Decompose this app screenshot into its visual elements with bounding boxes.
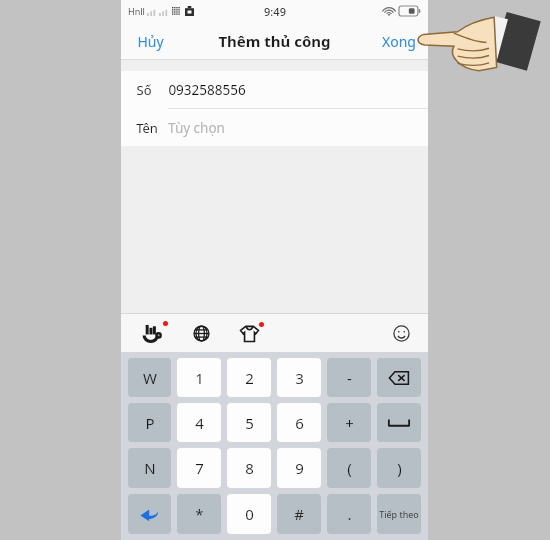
staticText: 3 <box>295 368 304 388</box>
button[interactable]: 8 <box>227 448 271 488</box>
staticText: 0 <box>245 504 254 524</box>
button[interactable]: Space <box>377 403 421 442</box>
button[interactable]: W <box>128 358 171 397</box>
staticText: Thêm thủ công <box>218 31 331 51</box>
button[interactable]: 3 <box>277 358 321 397</box>
staticText: ( <box>347 458 352 478</box>
button[interactable]: 7 <box>177 448 221 488</box>
staticText: Xong <box>382 32 416 51</box>
button[interactable]: N <box>128 448 171 488</box>
button[interactable]: Handwriting input <box>137 318 167 348</box>
staticText: 6 <box>295 413 304 433</box>
button[interactable]: Keyboard themes <box>234 318 264 348</box>
button[interactable]: 5 <box>227 403 271 442</box>
button[interactable]: 0 <box>227 494 271 534</box>
button[interactable]: Emoji <box>386 318 416 348</box>
button[interactable]: + <box>327 403 371 442</box>
button[interactable]: Tên <box>121 109 428 146</box>
button[interactable]: 1 <box>177 358 221 397</box>
button[interactable]: Undo <box>128 494 171 534</box>
button[interactable]: 6 <box>277 403 321 442</box>
staticText: Số <box>136 81 152 99</box>
button[interactable]: ( <box>327 448 371 488</box>
button[interactable]: 9 <box>277 448 321 488</box>
staticText: 1 <box>195 368 204 388</box>
staticText: * <box>195 504 204 524</box>
staticText: + <box>345 413 354 433</box>
button[interactable]: Số <box>121 71 428 108</box>
staticText: ) <box>397 458 402 478</box>
button[interactable]: . <box>327 494 371 534</box>
staticText: Hủy <box>137 32 164 51</box>
staticText: N <box>144 458 156 478</box>
button[interactable]: ) <box>377 448 421 488</box>
staticText: 7 <box>195 458 204 478</box>
staticText: 8 <box>245 458 254 478</box>
button[interactable]: Delete <box>377 358 421 397</box>
button[interactable]: * <box>177 494 221 534</box>
staticText: 9:49 <box>264 4 286 19</box>
staticText: W <box>143 368 157 388</box>
staticText: P <box>145 413 155 433</box>
button[interactable]: 2 <box>227 358 271 397</box>
staticText: - <box>347 368 352 388</box>
staticText: 0932588556 <box>168 81 246 99</box>
staticText: # <box>294 504 304 524</box>
staticText: Tùy chọn <box>168 119 225 137</box>
staticText: 4 <box>195 413 204 433</box>
button[interactable]: Change keyboard language <box>186 318 216 348</box>
staticText: 2 <box>245 368 254 388</box>
button[interactable]: - <box>327 358 371 397</box>
button[interactable]: Xong <box>370 26 428 57</box>
button[interactable]: 4 <box>177 403 221 442</box>
button[interactable]: Tiếp theo <box>377 494 421 534</box>
staticText: Tiếp theo <box>379 508 419 520</box>
staticText: 5 <box>245 413 254 433</box>
staticText: Tên <box>136 119 158 137</box>
staticText: Hnll <box>128 5 145 17</box>
button[interactable]: Hủy <box>121 26 180 57</box>
button[interactable]: P <box>128 403 171 442</box>
staticText: . <box>347 504 352 524</box>
staticText: 9 <box>295 458 304 478</box>
button[interactable]: # <box>277 494 321 534</box>
